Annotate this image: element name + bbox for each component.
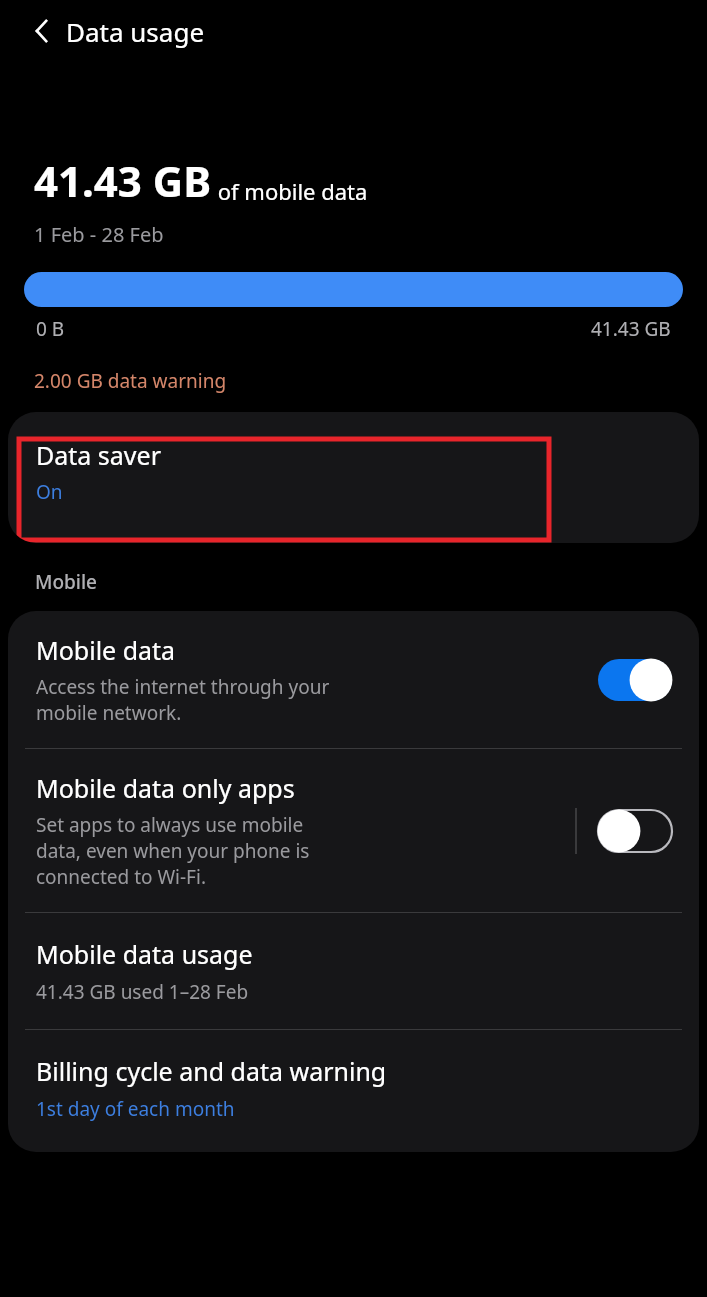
button[interactable]: Toggle off [593,805,677,857]
staticText: 1st day of each month [36,1096,235,1122]
staticText: 1 Feb - 28 Feb [34,221,164,248]
staticText: 0 B [36,316,65,342]
staticText: of mobile data [212,176,368,206]
staticText: Billing cycle and data warning [36,1054,387,1088]
staticText: Mobile data [36,633,176,667]
button[interactable]: Billing cycle and data warning [8,1030,699,1152]
staticText: Set apps to always use mobile data, even… [36,812,348,890]
staticText: Mobile [35,569,97,595]
staticText: 41.43 GB used 1–28 Feb [36,979,249,1005]
button[interactable]: Toggle on [593,654,677,706]
button[interactable]: Mobile data [8,611,699,748]
button[interactable]: Mobile data only apps [8,749,699,912]
staticText: Mobile data only apps [36,771,295,805]
staticText: On [36,479,63,505]
staticText: Access the internet through your mobile … [36,674,336,726]
staticText: 2.00 GB data warning [34,368,227,394]
button[interactable]: Mobile data usage [8,913,699,1029]
staticText: 41.43 GB [34,152,212,209]
staticText: Data usage [66,14,205,49]
staticText: Data saver [36,438,161,472]
button[interactable]: Back [14,3,70,59]
button[interactable]: Data saver [8,412,699,535]
staticText: Mobile data usage [36,937,253,971]
staticText: 41.43 GB [591,316,671,342]
